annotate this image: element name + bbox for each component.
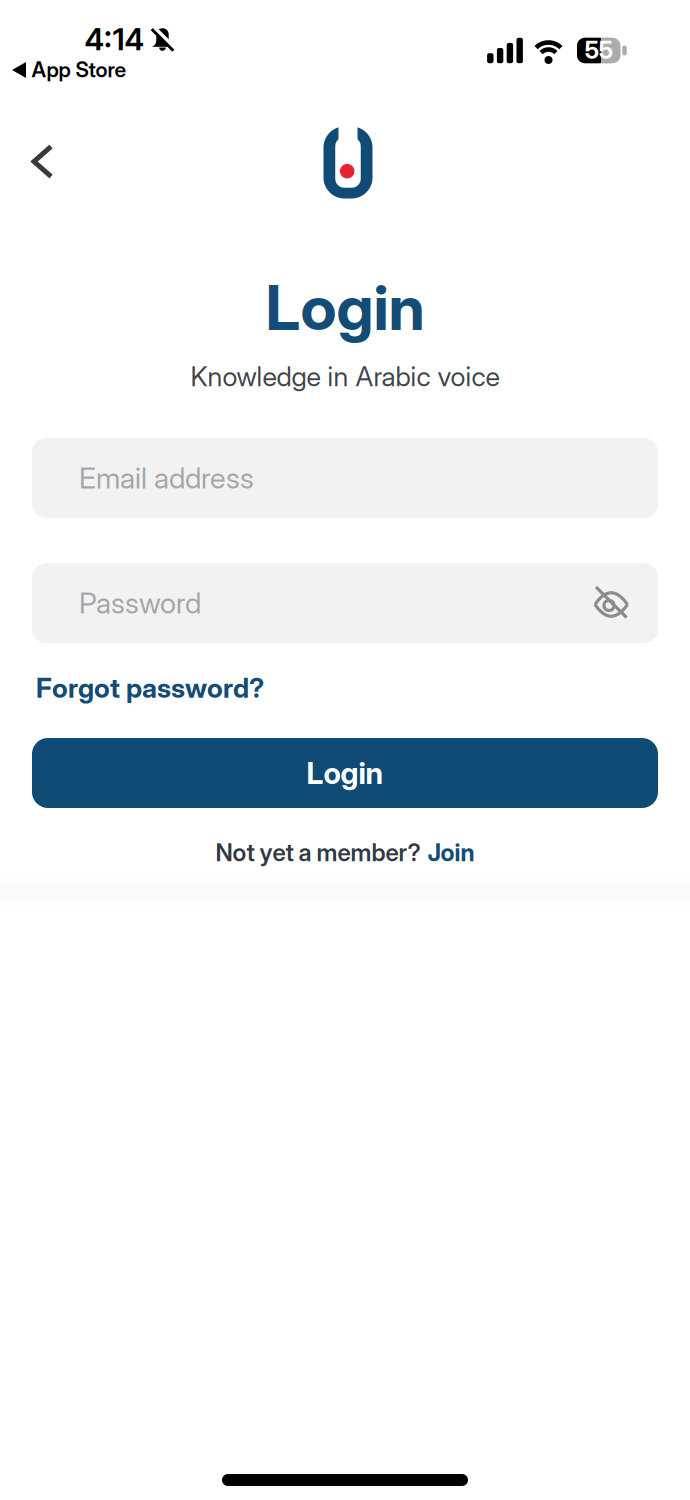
staticText: Login — [306, 755, 383, 791]
staticText: Not yet a member? — [215, 838, 420, 867]
button[interactable]: Password — [32, 563, 658, 643]
staticText: Join — [427, 838, 474, 867]
staticText: Login — [265, 270, 424, 345]
button[interactable]: Forgot password? — [36, 672, 264, 704]
staticText: Password — [79, 585, 201, 621]
staticText: Knowledge in Arabic voice — [190, 360, 499, 393]
button[interactable]: Show password — [591, 582, 631, 622]
staticText: 55 — [585, 35, 613, 64]
staticText: 4:14 — [84, 20, 143, 58]
button[interactable]: Back — [30, 144, 54, 178]
button[interactable]: Join — [427, 838, 474, 867]
staticText: Email address — [79, 460, 254, 496]
staticText: App Store — [31, 57, 126, 82]
staticText: Forgot password? — [36, 672, 264, 704]
button[interactable]: Email address — [32, 438, 658, 518]
button[interactable]: Login — [32, 738, 658, 808]
